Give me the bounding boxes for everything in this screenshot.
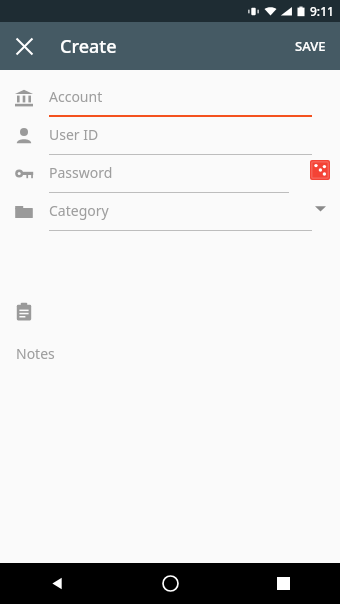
button[interactable]: User ID [49, 117, 329, 155]
button[interactable]: Generate password [304, 154, 336, 186]
button[interactable]: Password [49, 155, 329, 193]
staticText: Password [49, 163, 113, 182]
staticText: User ID [49, 125, 99, 144]
staticText: Notes [16, 344, 55, 363]
staticText: SAVE [295, 37, 326, 55]
button[interactable]: Home [114, 563, 227, 604]
button[interactable]: Recents [227, 563, 340, 604]
button[interactable]: Category [49, 193, 329, 231]
button[interactable]: Close [4, 26, 44, 66]
staticText: Account [49, 87, 103, 106]
button[interactable]: Back [0, 563, 114, 604]
button[interactable]: Choose category [304, 192, 336, 224]
button[interactable]: Notes [0, 338, 340, 604]
button[interactable]: Account [49, 79, 329, 117]
button[interactable]: SAVE [281, 22, 340, 70]
staticText: Create [60, 34, 117, 59]
staticText: 9:11 [310, 3, 334, 19]
staticText: Category [49, 201, 109, 220]
